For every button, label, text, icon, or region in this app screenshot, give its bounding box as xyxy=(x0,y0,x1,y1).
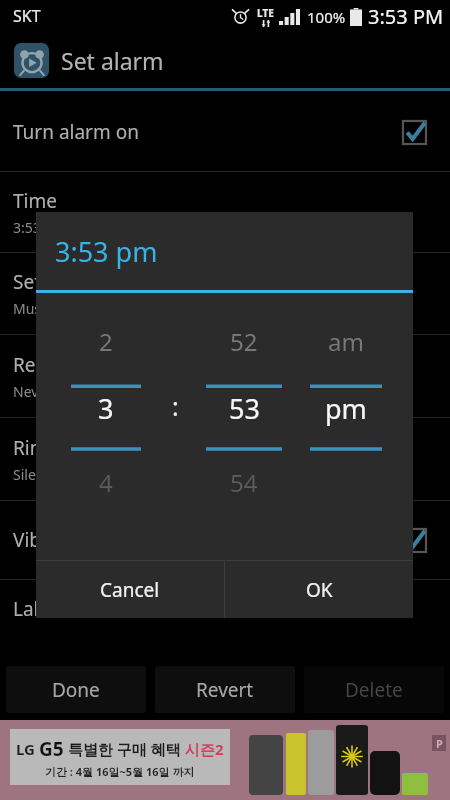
staticText: : xyxy=(172,389,179,423)
button[interactable]: Set alarm xyxy=(0,32,450,88)
button[interactable]: Label xyxy=(0,580,450,638)
staticText: Vibrate xyxy=(13,527,77,553)
button[interactable]: OK xyxy=(225,561,413,618)
button[interactable]: Time xyxy=(0,172,450,252)
staticText: Revert xyxy=(196,677,254,703)
button[interactable]: Delete xyxy=(304,666,444,713)
staticText: 54 xyxy=(230,466,258,499)
staticText: 2 xyxy=(99,325,113,358)
staticText: OK xyxy=(306,577,333,603)
staticText: 3 xyxy=(98,390,114,427)
button[interactable]: Cancel xyxy=(36,561,224,618)
staticText: 53 xyxy=(229,390,260,427)
button[interactable]: LG G5 advertisement xyxy=(0,720,450,800)
button[interactable]: Vibrate xyxy=(0,501,450,579)
staticText: Set alarm xyxy=(61,45,164,76)
staticText: 시즌2 xyxy=(185,739,224,759)
staticText: Time xyxy=(13,188,57,214)
button[interactable]: Ringtone xyxy=(0,418,450,500)
staticText: 100% xyxy=(307,7,346,27)
staticText: Silent xyxy=(13,465,50,484)
staticText: Delete xyxy=(345,677,403,703)
button[interactable]: Turn alarm on xyxy=(0,93,450,171)
staticText: SKT xyxy=(13,5,41,27)
staticText: Turn alarm on xyxy=(13,119,139,145)
staticText: G5 xyxy=(39,736,64,762)
staticText: Done xyxy=(52,677,100,703)
staticText: Repeat weekly xyxy=(13,352,142,378)
staticText: 52 xyxy=(230,325,258,358)
staticText: P xyxy=(436,736,443,751)
button[interactable]: Repeat weekly xyxy=(0,335,450,417)
staticText: pm xyxy=(325,390,367,427)
staticText: 특별한 구매 혜택 xyxy=(64,739,185,759)
staticText: Never xyxy=(13,382,53,401)
staticText: 기간 : 4월 16일~5월 16일 까지 xyxy=(45,764,195,779)
staticText: Label xyxy=(13,596,61,622)
staticText: 4 xyxy=(99,466,113,499)
button[interactable]: Done xyxy=(6,666,146,713)
staticText: LTE xyxy=(257,6,274,20)
button[interactable]: Revert xyxy=(155,666,295,713)
staticText: Cancel xyxy=(100,577,160,603)
staticText: am xyxy=(328,325,364,358)
staticText: LG xyxy=(16,739,39,759)
staticText: 3:53 PM xyxy=(368,3,444,30)
staticText: Ringtone xyxy=(13,435,94,461)
staticText: Set alarm type xyxy=(13,269,142,295)
staticText: 3:53 pm xyxy=(55,233,158,270)
staticText: Music xyxy=(13,299,52,318)
staticText: 3:53 pm xyxy=(13,218,67,237)
button[interactable]: Set alarm type xyxy=(0,253,450,334)
